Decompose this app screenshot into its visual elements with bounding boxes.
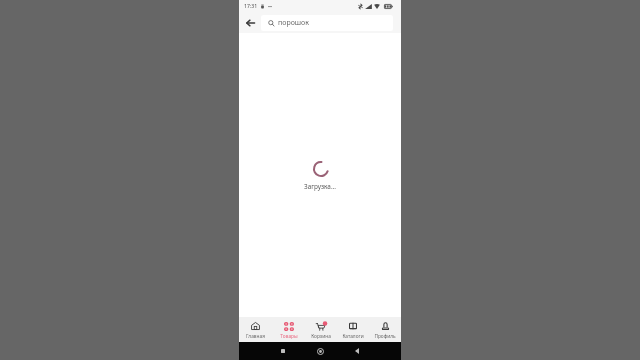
- button[interactable]: Корзина: [305, 317, 337, 342]
- staticText: Товары: [280, 333, 298, 340]
- button[interactable]: Home: [309, 342, 331, 360]
- staticText: Главная: [246, 333, 265, 340]
- button[interactable]: Профиль: [369, 317, 401, 342]
- button[interactable]: Каталоги: [337, 317, 369, 342]
- button[interactable]: порошок: [261, 15, 393, 31]
- button[interactable]: Back: [239, 12, 261, 33]
- button[interactable]: Товары: [272, 317, 305, 342]
- staticText: порошок: [278, 18, 309, 28]
- staticText: Каталоги: [342, 333, 364, 340]
- button[interactable]: Back: [346, 342, 368, 360]
- staticText: 17:31: [244, 3, 258, 10]
- staticText: Корзина: [311, 333, 331, 340]
- staticText: Профиль: [374, 333, 396, 340]
- button[interactable]: Главная: [239, 317, 272, 342]
- button[interactable]: Recent apps: [272, 342, 294, 360]
- staticText: Загрузка...: [304, 182, 337, 191]
